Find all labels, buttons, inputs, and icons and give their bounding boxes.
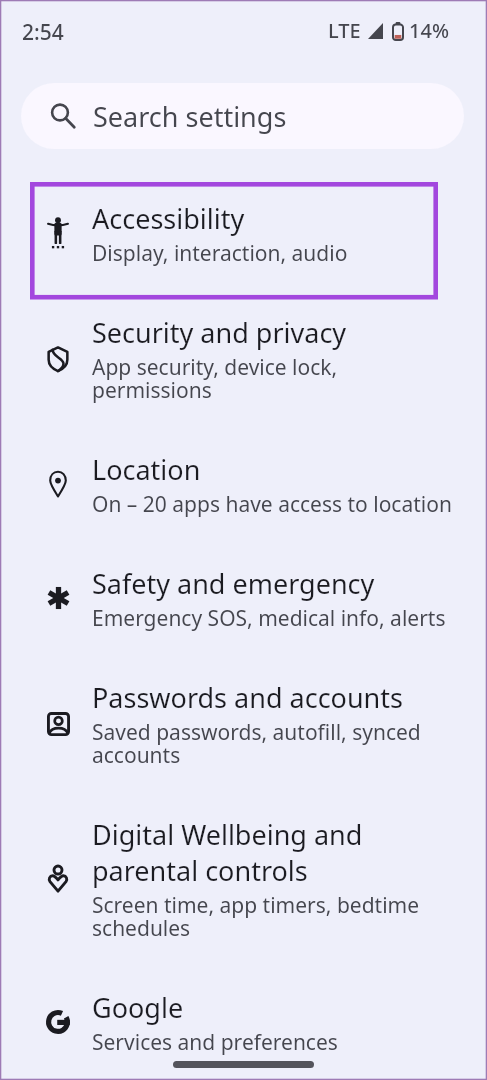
staticText: Search settings: [93, 98, 287, 135]
button[interactable]: Safety and emergency: [0, 541, 487, 655]
staticText: Digital Wellbeing and parental controls: [92, 816, 460, 888]
staticText: Saved passwords, autofill, synced accoun…: [92, 722, 460, 768]
button[interactable]: Google: [0, 965, 487, 1079]
staticText: 14%: [409, 17, 449, 44]
button[interactable]: Digital Wellbeing and parental controls: [0, 792, 487, 965]
staticText: LTE: [328, 17, 361, 44]
staticText: Services and preferences: [92, 1032, 338, 1055]
staticText: Passwords and accounts: [92, 679, 403, 715]
button[interactable]: Accessibility: [0, 176, 487, 290]
button[interactable]: Search settings: [21, 83, 464, 149]
button[interactable]: Security and privacy: [0, 290, 487, 427]
staticText: On – 20 apps have access to location: [92, 494, 452, 517]
staticText: Google: [92, 989, 184, 1025]
staticText: 2:54: [22, 18, 64, 47]
staticText: Emergency SOS, medical info, alerts: [92, 608, 446, 631]
staticText: Display, interaction, audio: [92, 243, 348, 266]
staticText: Security and privacy: [92, 314, 347, 350]
button[interactable]: Location: [0, 427, 487, 541]
button[interactable]: Passwords and accounts: [0, 655, 487, 792]
staticText: Screen time, app timers, bedtime schedul…: [92, 895, 460, 941]
staticText: Safety and emergency: [92, 565, 375, 601]
staticText: Location: [92, 451, 201, 487]
staticText: Accessibility: [92, 200, 245, 236]
staticText: App security, device lock, permissions: [92, 357, 460, 403]
